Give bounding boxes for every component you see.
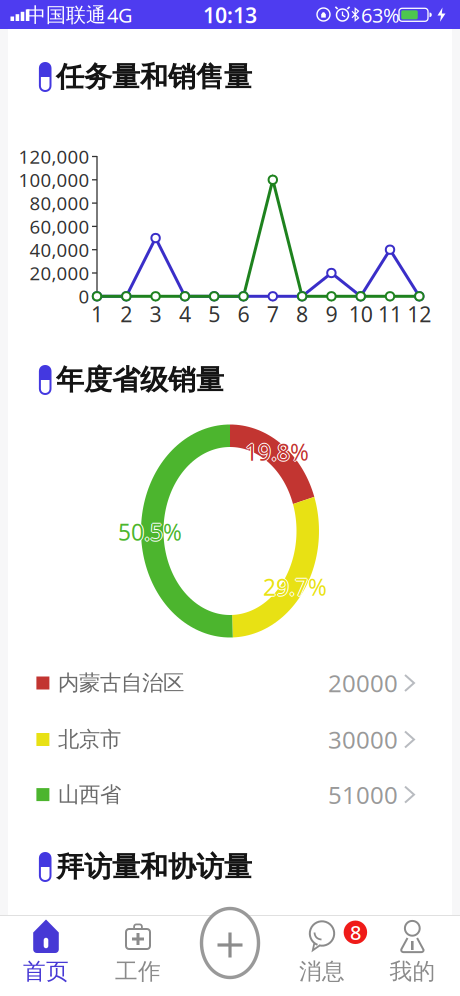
staticText: 首页 bbox=[23, 958, 69, 985]
button[interactable]: 北京市 bbox=[0, 712, 460, 767]
staticText: 8 bbox=[350, 919, 361, 946]
staticText: 11 bbox=[378, 300, 402, 328]
staticText: 19.8% bbox=[245, 438, 309, 468]
staticText: 内蒙古自治区 bbox=[58, 670, 184, 696]
staticText: 年度省级销量 bbox=[56, 363, 224, 397]
button[interactable] bbox=[192, 907, 268, 993]
staticText: 29.7% bbox=[263, 571, 327, 601]
staticText: 山西省 bbox=[58, 781, 121, 808]
button[interactable]: 8 bbox=[276, 915, 368, 996]
staticText: 1 bbox=[91, 300, 103, 328]
staticText: 6 bbox=[237, 300, 249, 328]
button[interactable]: 我的 bbox=[368, 915, 460, 996]
staticText: 20000 bbox=[328, 667, 398, 699]
staticText: 9 bbox=[325, 300, 337, 328]
staticText: 60,000 bbox=[29, 214, 89, 239]
staticText: 10:13 bbox=[203, 1, 257, 29]
staticText: 12 bbox=[407, 300, 431, 328]
staticText: 8 bbox=[296, 300, 308, 328]
staticText: 4G bbox=[107, 2, 133, 28]
staticText: 2 bbox=[120, 300, 132, 328]
staticText: 0 bbox=[78, 284, 89, 309]
staticText: 4 bbox=[179, 300, 191, 328]
staticText: 我的 bbox=[389, 958, 435, 985]
staticText: 29.7% bbox=[263, 573, 327, 603]
staticText: 50.5% bbox=[118, 516, 182, 546]
staticText: 7 bbox=[267, 300, 279, 328]
staticText: 100,000 bbox=[18, 167, 89, 192]
staticText: 80,000 bbox=[29, 191, 89, 215]
staticText: 29.7% bbox=[263, 572, 327, 602]
staticText: 消息 bbox=[299, 958, 345, 985]
staticText: 20,000 bbox=[29, 261, 89, 285]
staticText: 120,000 bbox=[18, 144, 89, 169]
staticText: 63% bbox=[361, 2, 400, 28]
staticText: 3 bbox=[150, 300, 162, 328]
staticText: 29.7% bbox=[262, 572, 326, 602]
staticText: 工作 bbox=[115, 958, 161, 985]
staticText: 19.8% bbox=[244, 437, 308, 467]
staticText: 任务量和销售量 bbox=[56, 60, 252, 94]
staticText: 50.5% bbox=[117, 517, 181, 547]
staticText: 拜访量和协访量 bbox=[56, 850, 252, 884]
staticText: 29.7% bbox=[264, 572, 328, 602]
staticText: 50.5% bbox=[119, 517, 183, 547]
staticText: 5 bbox=[208, 300, 220, 328]
staticText: 10 bbox=[349, 300, 373, 328]
staticText: 19.8% bbox=[246, 437, 310, 467]
staticText: 50.5% bbox=[118, 517, 182, 547]
staticText: 40,000 bbox=[29, 237, 89, 262]
staticText: 中国联通 bbox=[26, 3, 106, 27]
staticText: 北京市 bbox=[58, 726, 121, 753]
staticText: 51000 bbox=[328, 779, 398, 811]
staticText: 19.8% bbox=[245, 437, 309, 467]
button[interactable]: 内蒙古自治区 bbox=[0, 655, 460, 710]
staticText: 19.8% bbox=[245, 436, 309, 466]
staticText: 50.5% bbox=[118, 518, 182, 548]
button[interactable]: 工作 bbox=[92, 915, 184, 996]
button[interactable]: 山西省 bbox=[0, 767, 460, 822]
staticText: 30000 bbox=[328, 724, 398, 755]
button[interactable]: 首页 bbox=[0, 915, 92, 996]
